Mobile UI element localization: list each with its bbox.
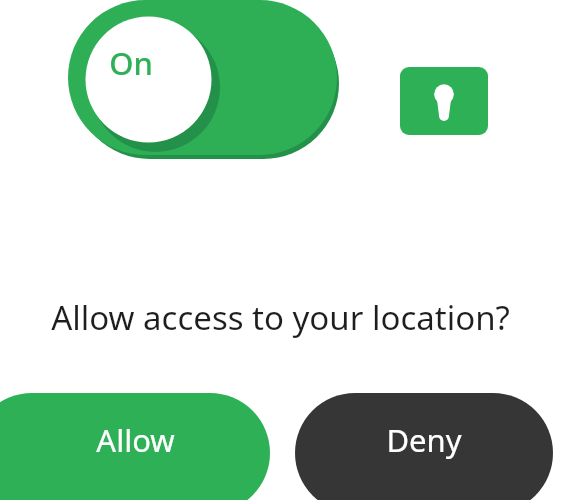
staticText: Deny — [386, 419, 462, 461]
button[interactable]: Lock — [400, 67, 488, 135]
staticText: Allow — [96, 419, 175, 461]
staticText: On — [109, 42, 153, 84]
button[interactable]: Allow — [0, 393, 270, 500]
button[interactable]: Location toggle, On — [60, 0, 350, 168]
button[interactable]: Deny — [295, 393, 553, 500]
staticText: Allow access to your location? — [51, 295, 510, 340]
